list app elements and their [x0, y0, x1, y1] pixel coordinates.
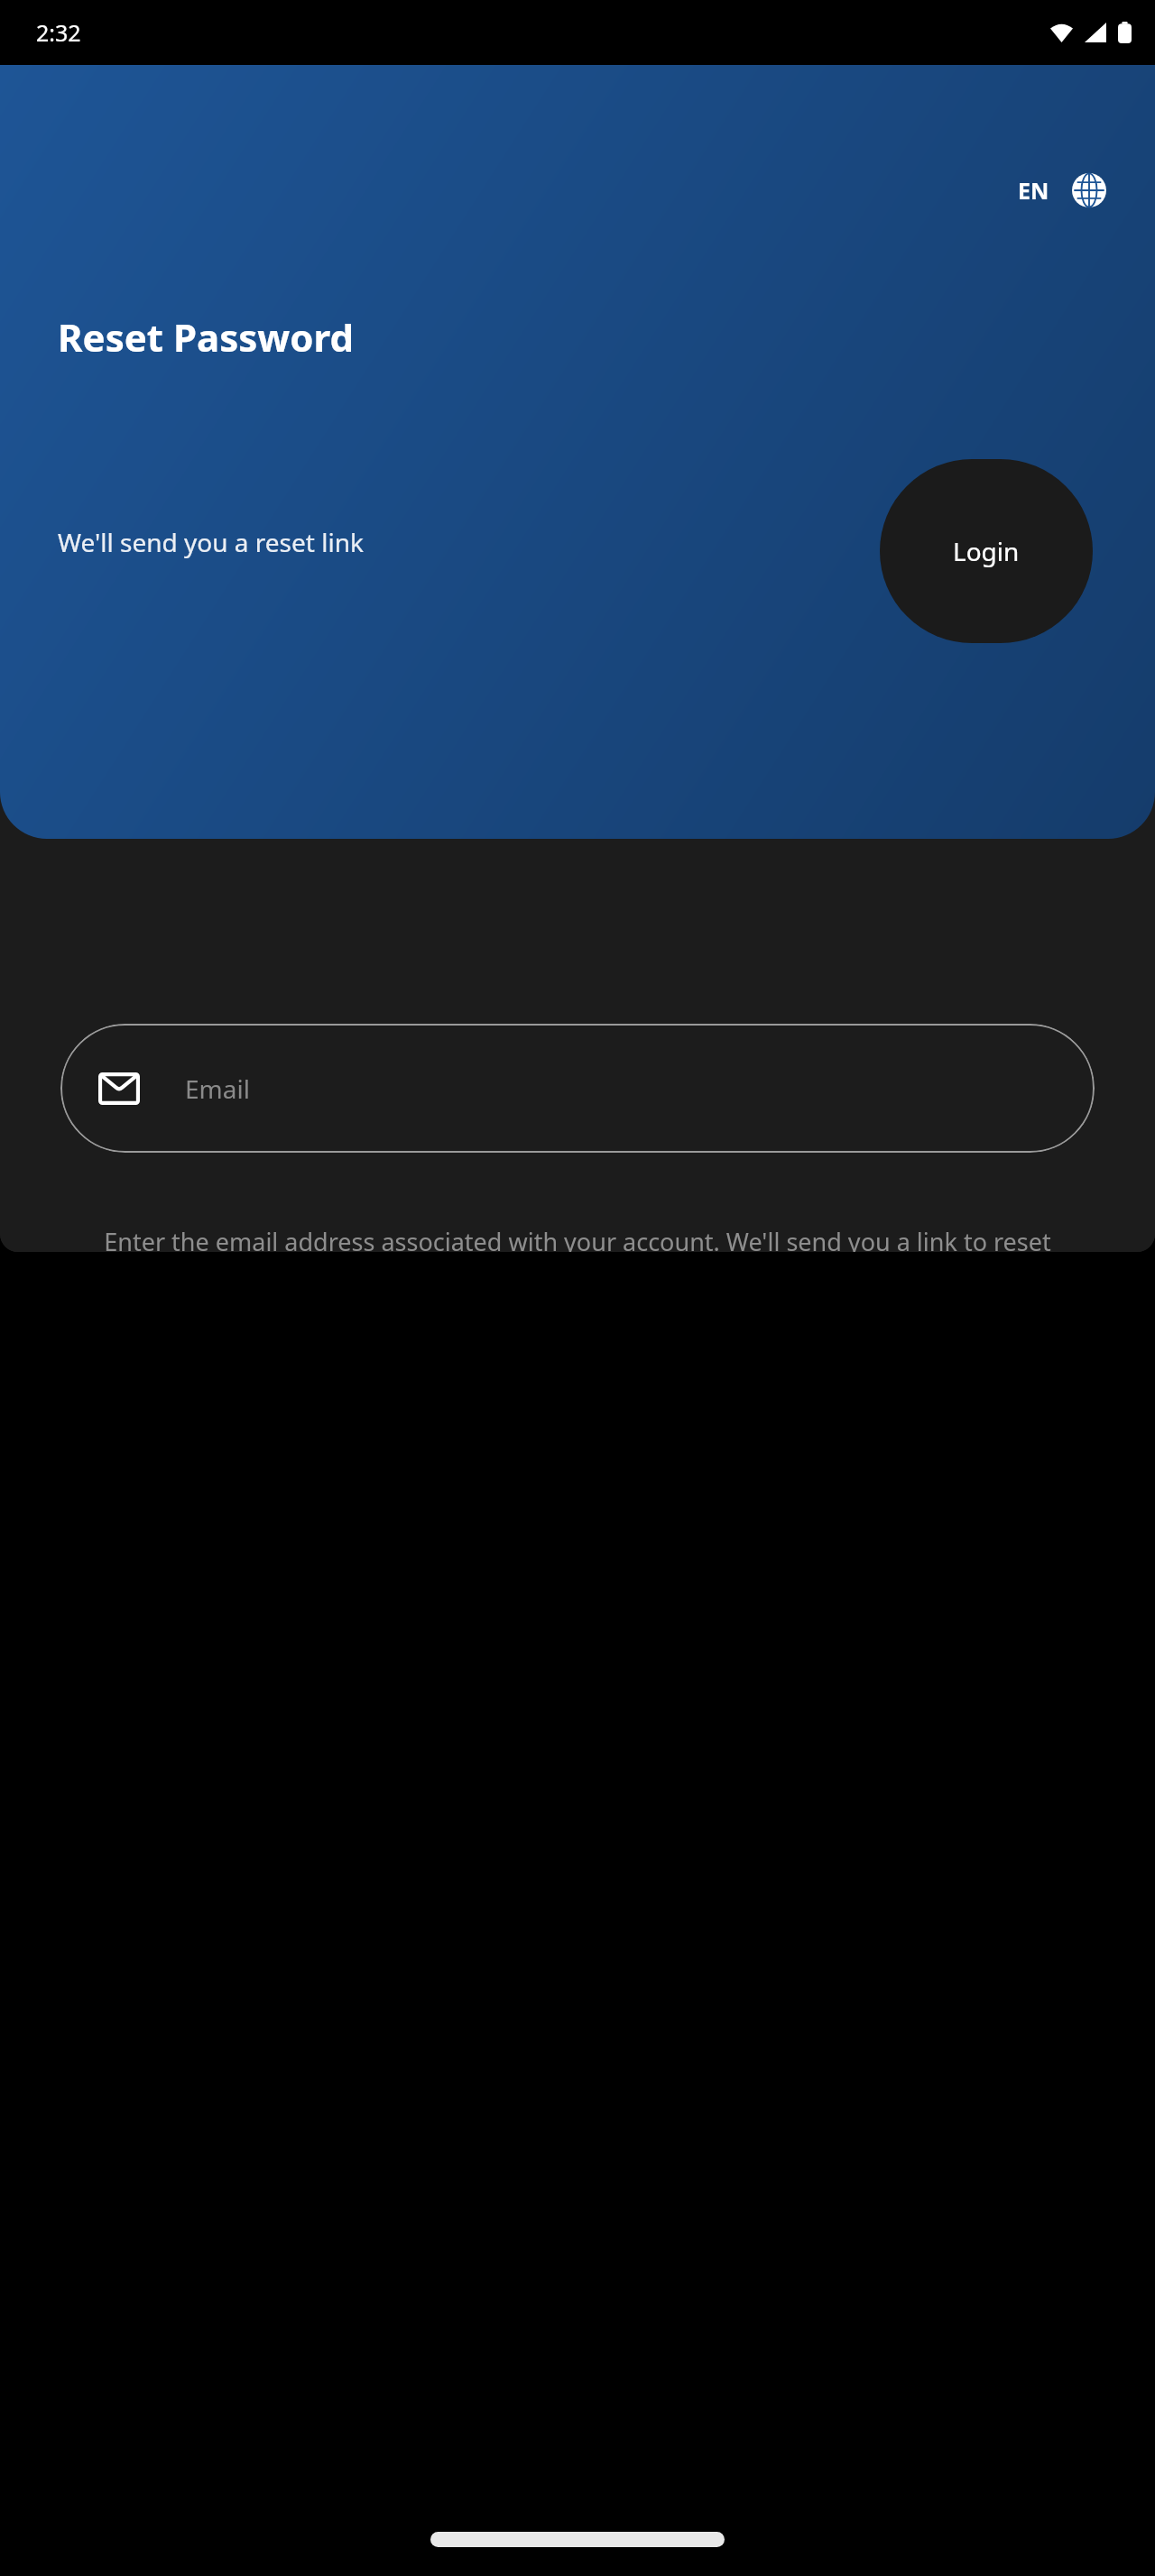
button[interactable]: EN	[1012, 168, 1112, 213]
button[interactable]: Login	[880, 459, 1093, 643]
staticText: EN	[1018, 175, 1049, 206]
other: Change language	[1072, 173, 1106, 207]
staticText: Email	[185, 1072, 250, 1106]
staticText: Enter the email address associated with …	[99, 1225, 1056, 1252]
button[interactable]: Email	[60, 1024, 1095, 1153]
staticText: We'll send you a reset link	[58, 525, 364, 559]
staticText: Login	[953, 534, 1020, 568]
staticText: 2:32	[36, 17, 81, 48]
staticText: Reset Password	[58, 311, 355, 363]
